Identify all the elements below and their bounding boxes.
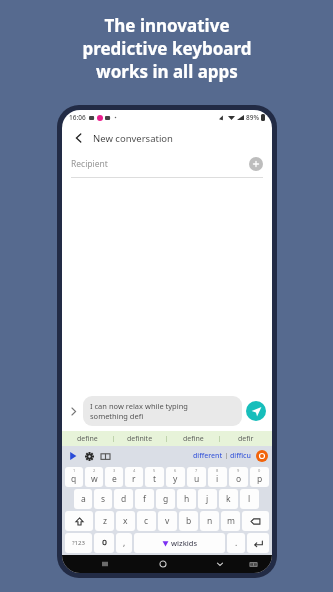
staticText: k [226,493,231,505]
staticText: The innovative predictive keyboard works… [82,14,252,83]
button[interactable]: , [116,533,132,553]
staticText: 9 [237,468,240,473]
button[interactable]: 8 [208,467,227,487]
button[interactable]: Back [71,130,87,146]
staticText: w [91,473,98,485]
button[interactable]: define [167,431,219,446]
button[interactable]: 6 [166,467,185,487]
staticText: . [235,537,238,549]
staticText: q [71,473,77,485]
staticText: z [103,515,107,527]
staticText: e [112,473,117,485]
staticText: 89% [246,113,259,122]
staticText: defir [238,434,254,444]
button[interactable]: Send [246,401,266,421]
button[interactable]: different [190,451,226,461]
staticText: 4 [133,468,136,473]
button[interactable]: definite [114,431,166,446]
button[interactable]: j [198,489,217,509]
staticText: v [165,515,170,527]
staticText: o [236,473,242,485]
staticText: different [193,451,223,461]
staticText: 8 [216,468,219,473]
staticText: 0 [258,468,261,473]
staticText: wizkids [171,538,198,548]
staticText: define [77,434,98,444]
button[interactable]: defir [220,431,272,446]
staticText: r [132,473,136,485]
button[interactable]: v [158,511,177,531]
staticText: m [227,515,235,527]
button[interactable]: 0 [250,467,269,487]
staticText: n [207,515,213,527]
button[interactable]: define [62,431,113,446]
staticText: definite [127,434,153,444]
button[interactable]: Space [134,533,225,553]
staticText: y [173,473,178,485]
button[interactable]: Keyboard layout [248,559,258,569]
staticText: define [183,434,204,444]
button[interactable]: Dictionary [98,449,112,463]
staticText: j [206,493,209,505]
button[interactable]: Add recipient [249,157,263,171]
button[interactable]: 7 [187,467,206,487]
staticText: p [257,473,263,485]
staticText: b [186,515,192,527]
button[interactable]: g [156,489,175,509]
button[interactable]: I can now relax while typing something d… [83,396,242,426]
staticText: 3 [113,468,116,473]
staticText: 5 [153,468,156,473]
staticText: g [163,493,169,505]
button[interactable]: 4 [125,467,143,487]
button[interactable]: n [200,511,219,531]
button[interactable]: k [219,489,238,509]
staticText: i [216,473,219,485]
button[interactable]: Recents [76,555,134,573]
button[interactable]: f [135,489,154,509]
button[interactable]: Home [134,555,191,573]
button[interactable]: ?123 [65,533,92,553]
button[interactable]: Play [66,449,80,463]
staticText: 16:06 [69,113,86,122]
button[interactable]: Record [256,450,268,462]
staticText: a [81,493,86,505]
button[interactable]: Enter [247,533,269,553]
button[interactable]: 2 [85,467,103,487]
button[interactable]: Shift [65,511,93,531]
button[interactable]: s [94,489,112,509]
staticText: h [184,493,190,505]
button[interactable]: l [240,489,259,509]
button[interactable]: difficu [227,451,254,461]
staticText: New conversation [93,132,173,145]
staticText: l [248,493,251,505]
button[interactable]: Settings [82,449,96,463]
button[interactable]: a [74,489,92,509]
button[interactable]: Hide keyboard [191,555,248,573]
button[interactable]: 3 [105,467,123,487]
button[interactable]: m [221,511,240,531]
staticText: , [123,537,126,549]
staticText: 2 [93,468,96,473]
button[interactable]: z [95,511,114,531]
staticText: s [101,493,106,505]
button[interactable]: Microphone [94,533,114,553]
staticText: Recipient [71,158,108,170]
button[interactable]: h [177,489,196,509]
staticText: 7 [195,468,198,473]
button[interactable]: . [227,533,245,553]
staticText: x [123,515,128,527]
staticText: ?123 [72,539,85,547]
staticText: 6 [174,468,177,473]
button[interactable]: Backspace [242,511,269,531]
staticText: t [153,473,157,485]
button[interactable]: 5 [145,467,164,487]
button[interactable]: c [137,511,156,531]
button[interactable]: 9 [229,467,248,487]
staticText: difficu [230,451,251,461]
button[interactable]: d [114,489,133,509]
button[interactable]: b [179,511,198,531]
button[interactable]: x [116,511,135,531]
staticText: u [194,473,200,485]
button[interactable]: 1 [65,467,83,487]
button[interactable]: Expand [67,405,80,418]
